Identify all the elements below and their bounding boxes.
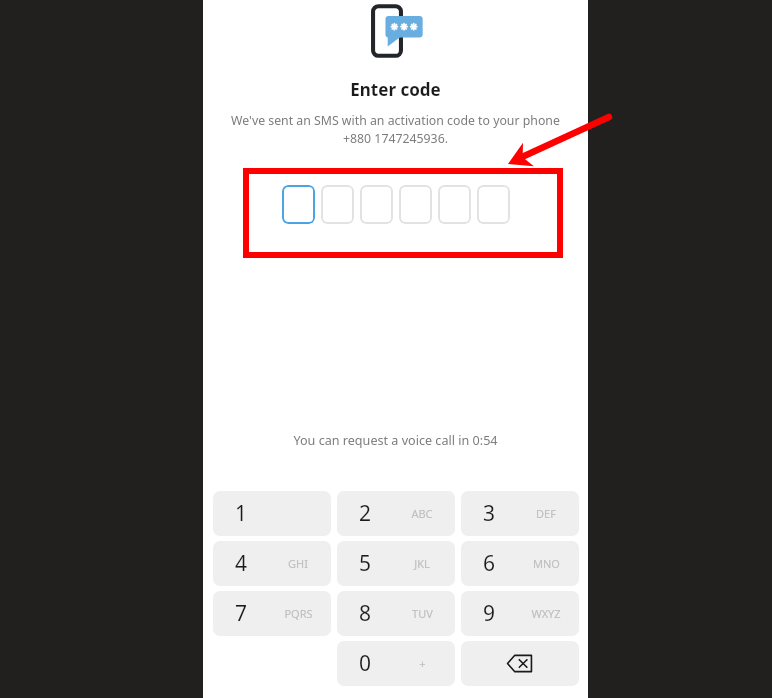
staticText: 1 <box>235 499 248 528</box>
button[interactable]: Backspace <box>461 641 579 686</box>
staticText: DEF <box>536 506 556 521</box>
button[interactable] <box>477 185 510 224</box>
staticText: 2 <box>359 499 372 528</box>
staticText: 4 <box>235 549 248 578</box>
button[interactable]: 6 <box>461 541 579 586</box>
button[interactable] <box>282 185 315 224</box>
staticText: 5 <box>359 549 372 578</box>
button[interactable]: 8 <box>337 591 455 636</box>
staticText: ABC <box>411 506 433 521</box>
staticText: Enter code <box>350 78 441 101</box>
staticText: 6 <box>483 549 496 578</box>
button[interactable]: 1 <box>213 491 331 536</box>
staticText: 8 <box>359 599 372 628</box>
button[interactable]: 0 <box>337 641 455 686</box>
staticText: You can request a voice call in 0:54 <box>293 432 498 449</box>
staticText: PQRS <box>284 606 313 621</box>
staticText: 9 <box>483 599 496 628</box>
staticText: We've sent an SMS with an activation cod… <box>231 112 560 147</box>
button[interactable]: 2 <box>337 491 455 536</box>
staticText: 7 <box>235 599 248 628</box>
button[interactable] <box>399 185 432 224</box>
button[interactable]: 3 <box>461 491 579 536</box>
staticText: GHI <box>288 556 308 571</box>
staticText: WXYZ <box>531 606 561 621</box>
button[interactable]: 4 <box>213 541 331 586</box>
button[interactable]: 7 <box>213 591 331 636</box>
button[interactable]: 9 <box>461 591 579 636</box>
button[interactable] <box>438 185 471 224</box>
button[interactable]: 5 <box>337 541 455 586</box>
staticText: 3 <box>483 499 496 528</box>
staticText: MNO <box>533 556 560 571</box>
staticText: 0 <box>359 649 372 678</box>
button[interactable] <box>321 185 354 224</box>
staticText: + <box>419 656 426 671</box>
button[interactable] <box>360 185 393 224</box>
staticText: TUV <box>412 606 433 621</box>
staticText: JKL <box>414 556 430 571</box>
